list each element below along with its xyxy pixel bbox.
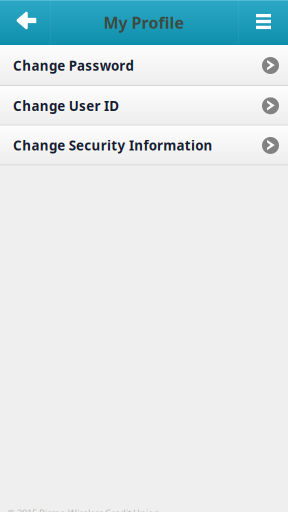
button[interactable]: Change User ID — [0, 86, 288, 126]
staticText: Change Password — [13, 57, 133, 74]
staticText: Change Security Information — [13, 137, 212, 154]
button[interactable]: Back — [0, 0, 50, 45]
staticText: My Profile — [103, 12, 184, 33]
staticText: © 2015 Pismo Wireless Credit Union — [7, 507, 160, 512]
button[interactable]: Change Security Information — [0, 126, 288, 165]
button[interactable]: Change Password — [0, 45, 288, 86]
staticText: Change User ID — [13, 97, 119, 115]
button[interactable]: Menu — [238, 0, 288, 45]
